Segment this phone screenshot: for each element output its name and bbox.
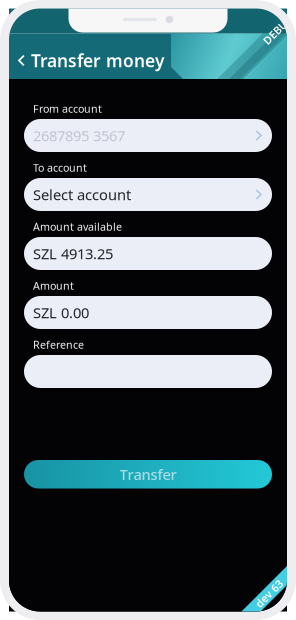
button[interactable]: Transfer money xyxy=(18,48,172,72)
staticText: SZL 4913.25 xyxy=(33,244,113,263)
staticText: Transfer money xyxy=(31,49,164,72)
staticText: 2687895 3567 xyxy=(33,126,125,145)
staticText: From account xyxy=(33,101,102,116)
staticText: Reference xyxy=(33,337,84,352)
staticText: DEBUG xyxy=(259,22,296,37)
staticText: SZL 0.00 xyxy=(33,303,89,322)
button[interactable]: Transfer xyxy=(24,460,272,488)
staticText: Select account xyxy=(33,185,131,204)
staticText: dev 63 xyxy=(252,586,286,601)
staticText: Amount available xyxy=(33,219,122,234)
staticText: Transfer xyxy=(119,464,176,484)
staticText: Amount xyxy=(33,278,74,293)
staticText: To account xyxy=(33,160,87,175)
